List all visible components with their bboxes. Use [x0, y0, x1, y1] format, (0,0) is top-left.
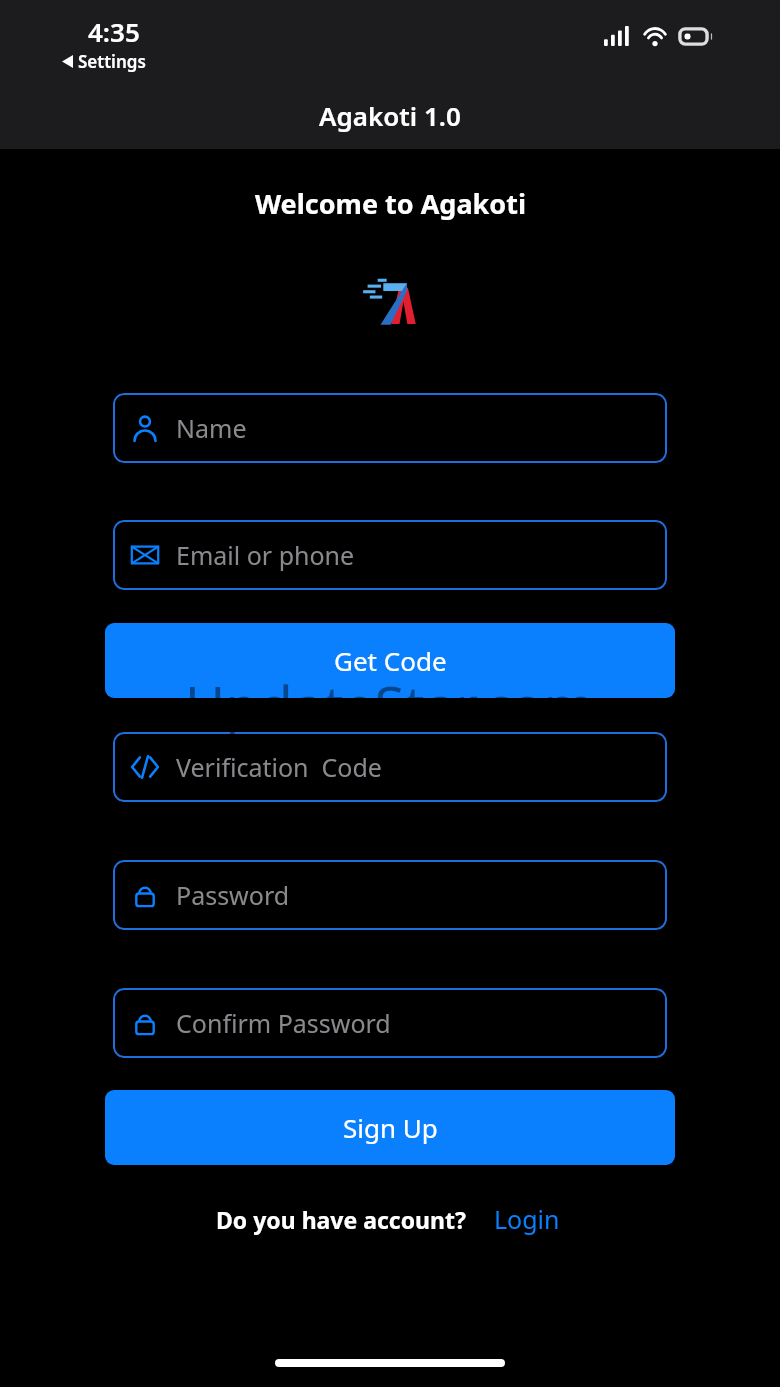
- staticText: Name: [176, 411, 247, 445]
- staticText: Settings: [78, 50, 146, 73]
- button[interactable]: Get Code: [105, 623, 675, 698]
- staticText: Agakoti 1.0: [319, 98, 461, 133]
- other: Name: [130, 413, 160, 443]
- button[interactable]: Password: [113, 860, 667, 930]
- staticText: Do you have account?: [216, 1204, 466, 1235]
- other: Verification code: [130, 752, 160, 782]
- button[interactable]: Login: [490, 1200, 564, 1238]
- button[interactable]: Sign Up: [105, 1090, 675, 1165]
- staticText: Email or phone: [176, 538, 355, 572]
- staticText: Verification Code: [176, 750, 382, 784]
- staticText: Login: [494, 1202, 560, 1236]
- button[interactable]: Password: [113, 988, 667, 1058]
- staticText: UpdateStar.com: [185, 667, 596, 742]
- other: Password: [130, 1008, 160, 1038]
- button[interactable]: Name: [113, 393, 667, 463]
- other: Email or phone: [130, 540, 160, 570]
- button[interactable]: Email or phone: [113, 520, 667, 590]
- button[interactable]: Back to Settings: [60, 49, 148, 74]
- staticText: Confirm Password: [176, 1006, 391, 1040]
- staticText: 4:35: [88, 14, 140, 49]
- button[interactable]: Verification code: [113, 732, 667, 802]
- other: Agakoti logo: [362, 272, 418, 328]
- staticText: Welcome to Agakoti: [255, 185, 526, 222]
- staticText: Get Code: [334, 643, 447, 678]
- staticText: Sign Up: [343, 1110, 438, 1145]
- other: Password: [130, 880, 160, 910]
- staticText: Password: [176, 878, 290, 912]
